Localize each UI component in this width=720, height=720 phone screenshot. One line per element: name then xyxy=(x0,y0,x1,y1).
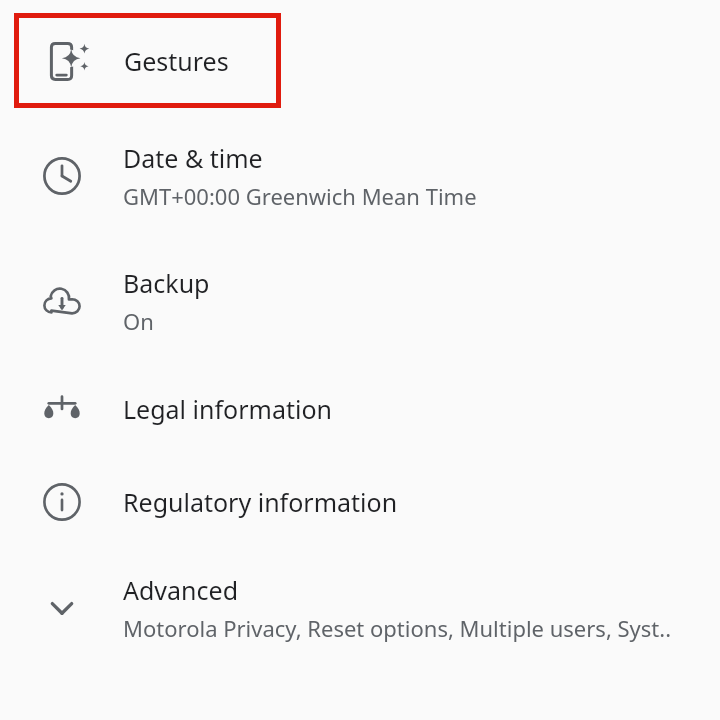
staticText: Legal information xyxy=(123,392,332,426)
button[interactable]: Backup xyxy=(0,265,720,337)
button[interactable]: Regulatory information xyxy=(0,478,720,526)
other: Legal information xyxy=(0,387,123,431)
staticText: Backup xyxy=(123,266,210,300)
button[interactable]: Gestures xyxy=(14,13,281,108)
button[interactable]: Legal information xyxy=(0,385,720,433)
button[interactable]: Date and time xyxy=(0,140,720,212)
staticText: Motorola Privacy, Reset options, Multipl… xyxy=(123,613,672,643)
other: Backup xyxy=(0,279,123,323)
button[interactable]: Expand advanced xyxy=(0,572,720,644)
staticText: On xyxy=(123,306,154,336)
other: Regulatory information xyxy=(0,480,123,524)
staticText: GMT+00:00 Greenwich Mean Time xyxy=(123,181,477,211)
other: Date and time xyxy=(0,154,123,198)
staticText: Advanced xyxy=(123,573,239,607)
staticText: Regulatory information xyxy=(123,485,398,519)
other: Expand advanced xyxy=(0,586,123,630)
staticText: Date & time xyxy=(123,141,263,175)
staticText: Gestures xyxy=(124,44,229,78)
